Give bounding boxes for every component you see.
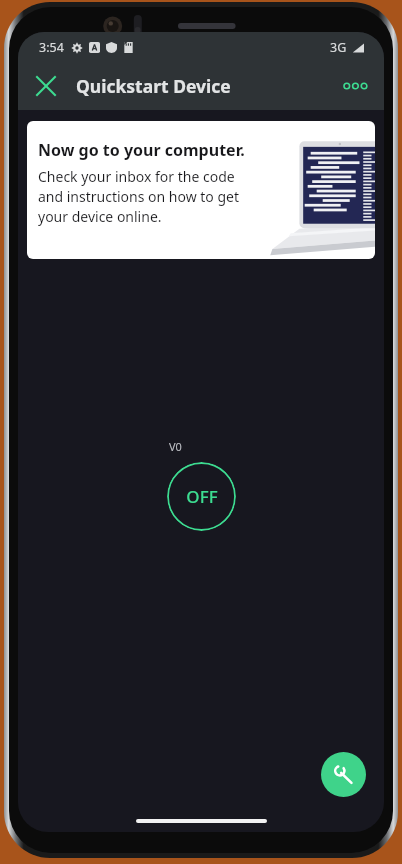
staticText: 3G (330, 39, 347, 56)
button[interactable]: More options (335, 66, 375, 106)
staticText: Quickstart Device (76, 74, 231, 98)
button[interactable]: Close (26, 66, 66, 106)
staticText: Now go to your computer. (38, 139, 245, 161)
staticText: V0 (169, 439, 182, 454)
button[interactable]: OFF (167, 462, 236, 531)
staticText: Check your inbox for the code and instru… (38, 167, 240, 226)
staticText: OFF (186, 485, 218, 508)
button[interactable]: Settings (321, 752, 366, 797)
staticText: 3:54 (39, 39, 64, 56)
button[interactable]: Now go to your computer. (27, 121, 375, 259)
